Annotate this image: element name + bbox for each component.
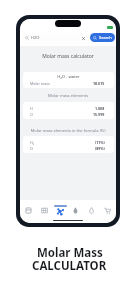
staticText: 18.015	[93, 81, 105, 86]
button[interactable]: H2O	[22, 33, 87, 42]
staticText: H	[30, 106, 33, 111]
staticText: Molar mass calculator	[20, 53, 116, 60]
button[interactable]: Molar mass	[53, 200, 68, 215]
button[interactable]: Solutions	[84, 200, 99, 214]
staticText: O	[30, 146, 33, 151]
staticText: Molar mass	[30, 81, 50, 86]
button[interactable]: Calculator	[21, 200, 36, 214]
staticText: Molar Mass	[37, 245, 103, 261]
staticText: H₂O - water	[23, 74, 114, 80]
staticText: CALCULATOR	[32, 258, 107, 274]
staticText: Search	[99, 35, 112, 40]
button[interactable]: Periodic table	[37, 200, 52, 214]
staticText: O	[30, 112, 33, 117]
button[interactable]: Search	[90, 33, 115, 42]
button[interactable]: Clear	[81, 36, 85, 40]
staticText: 1.008	[95, 106, 105, 111]
staticText: 15.999	[93, 112, 105, 117]
staticText: H₂	[30, 140, 34, 145]
staticText: Molar mass elements in the formula (%)	[20, 128, 116, 133]
staticText: H2O	[31, 35, 40, 40]
button[interactable]: Reactions	[68, 200, 83, 214]
button[interactable]: Shop	[100, 200, 115, 214]
staticText: (89%)	[95, 146, 105, 151]
staticText: Molar mass elements	[20, 93, 116, 98]
staticText: (11%)	[95, 140, 105, 145]
